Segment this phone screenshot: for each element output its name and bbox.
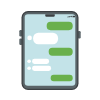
button[interactable]: Messaging app on phone illustration bbox=[0, 0, 100, 100]
